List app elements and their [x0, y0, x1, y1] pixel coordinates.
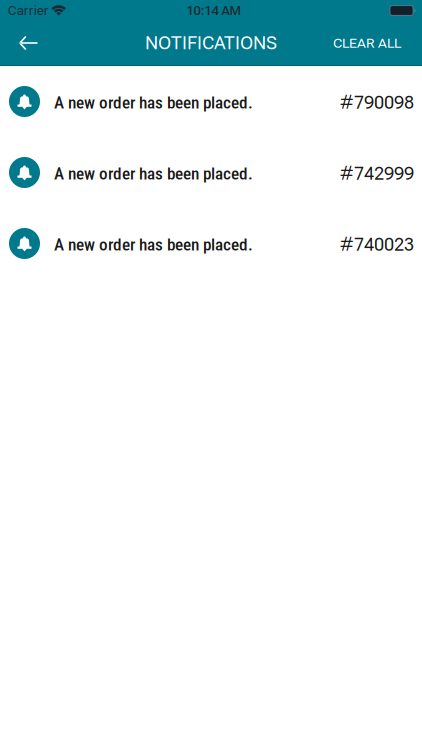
button[interactable]: CLEAR ALL: [323, 21, 411, 65]
staticText: 10:14 AM: [186, 3, 241, 18]
button[interactable]: A new order has been placed.: [0, 66, 422, 137]
staticText: A new order has been placed.: [54, 234, 253, 255]
button[interactable]: A new order has been placed.: [0, 137, 422, 208]
staticText: #740023: [340, 234, 414, 255]
staticText: A new order has been placed.: [54, 163, 253, 184]
button[interactable]: Back: [11, 21, 49, 65]
staticText: #790098: [340, 92, 414, 113]
staticText: #742999: [340, 163, 414, 184]
button[interactable]: A new order has been placed.: [0, 208, 422, 279]
staticText: CLEAR ALL: [333, 35, 401, 51]
staticText: A new order has been placed.: [54, 92, 253, 113]
staticText: Carrier: [8, 3, 49, 18]
staticText: NOTIFICATIONS: [145, 32, 277, 54]
